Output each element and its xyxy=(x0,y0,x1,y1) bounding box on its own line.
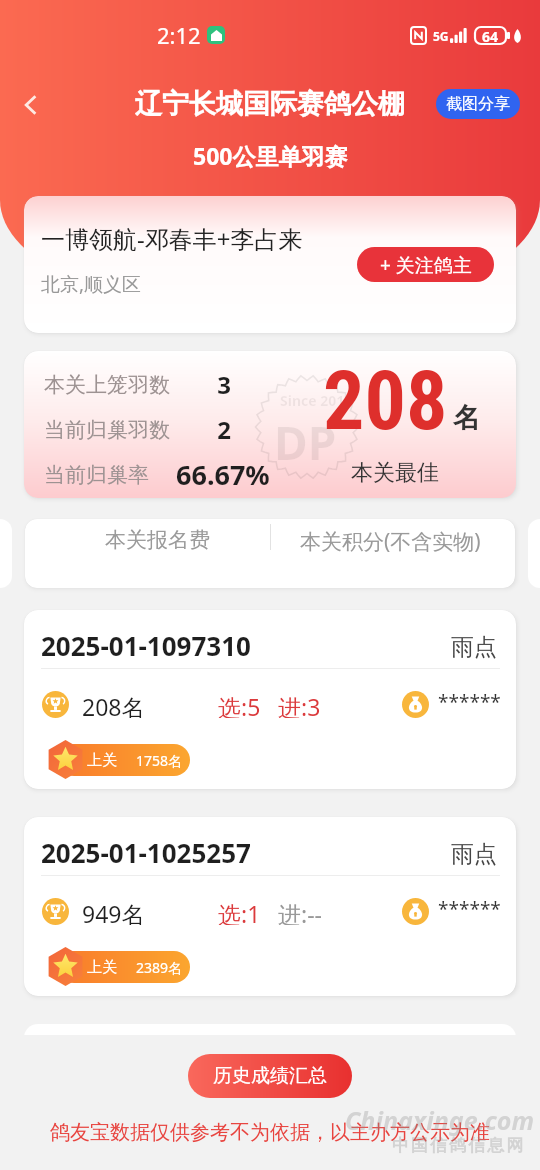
staticText: 64 xyxy=(482,27,499,44)
staticText: 截图分享 xyxy=(446,94,510,114)
staticText: ****** xyxy=(438,896,501,922)
button[interactable]: 截图分享 xyxy=(436,89,520,119)
staticText: 2:12 xyxy=(157,20,201,50)
button[interactable]: 一博领航-邓春丰+李占来 xyxy=(24,196,516,333)
staticText: 5G xyxy=(433,28,449,44)
staticText: Chinaxinge.com xyxy=(345,1103,535,1137)
staticText: 上关 xyxy=(87,751,117,770)
staticText: 历史成绩汇总 xyxy=(213,1064,327,1088)
button[interactable]: 2025-01-1025257 xyxy=(24,817,516,996)
staticText: 辽宁长城国际赛鸽公棚 xyxy=(135,87,405,121)
staticText: ****** xyxy=(438,689,501,715)
staticText: 2 xyxy=(194,413,254,446)
staticText: 1758名 xyxy=(136,751,183,770)
button[interactable]: 本关报名费 xyxy=(25,519,515,588)
staticText: 500公里单羽赛 xyxy=(193,140,348,171)
staticText: 208 xyxy=(323,353,448,449)
staticText: 208名 xyxy=(82,691,145,718)
staticText: 当前归巢率 xyxy=(44,462,149,488)
staticText: 选:5 xyxy=(218,691,261,718)
staticText: 一博领航-邓春丰+李占来 xyxy=(41,222,303,255)
staticText: 进:-- xyxy=(278,898,322,925)
staticText: 本关最佳 xyxy=(351,459,439,487)
staticText: 当前归巢羽数 xyxy=(44,417,170,443)
staticText: 2389名 xyxy=(136,958,183,977)
staticText: 雨点 xyxy=(451,633,497,662)
staticText: 鸽友宝数据仅供参考不为依据，以主办方公示为准 xyxy=(50,1120,490,1145)
staticText: 66.67% xyxy=(176,456,270,493)
staticText: 雨点 xyxy=(451,840,497,869)
staticText: 选:1 xyxy=(218,898,261,925)
button[interactable]: 历史成绩汇总 xyxy=(188,1054,352,1098)
staticText: DP xyxy=(274,411,337,474)
staticText: 2025-01-1025257 xyxy=(41,835,251,870)
staticText: 本关积分(不含实物) xyxy=(300,527,481,556)
staticText: 3 xyxy=(194,368,254,401)
staticText: 上关 xyxy=(87,958,117,977)
staticText: 北京,顺义区 xyxy=(41,271,142,297)
staticText: 本关报名费 xyxy=(105,527,210,553)
staticText: 949名 xyxy=(82,898,145,925)
staticText: Since 2019 xyxy=(280,391,353,410)
staticText: 名 xyxy=(453,401,480,435)
staticText: 进:3 xyxy=(278,691,321,718)
staticText: 本关上笼羽数 xyxy=(44,372,170,398)
staticText: + 关注鸽主 xyxy=(380,252,472,278)
button[interactable]: 2025-01-1097310 xyxy=(24,610,516,789)
staticText: 中国信鸽信息网 xyxy=(392,1135,526,1156)
button[interactable]: + 关注鸽主 xyxy=(357,247,494,282)
staticText: 2025-01-1097310 xyxy=(41,628,251,663)
button[interactable]: Back xyxy=(10,84,52,126)
